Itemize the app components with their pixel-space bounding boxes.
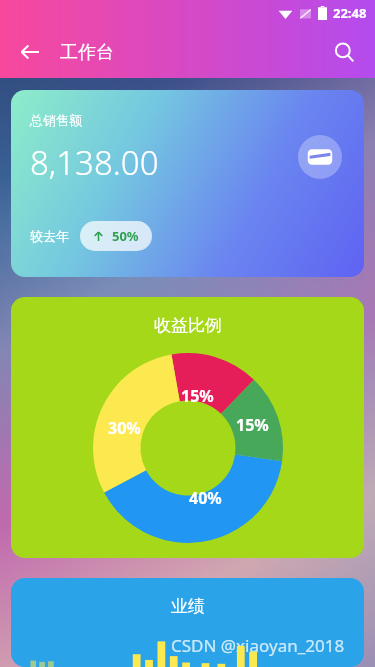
staticText: 业绩 — [171, 596, 205, 617]
button[interactable]: 业绩 — [11, 578, 364, 667]
staticText: 较去年 — [30, 228, 69, 244]
staticText: 22:48 — [333, 4, 367, 22]
button[interactable]: 收益比例 — [11, 297, 364, 558]
button[interactable]: Wallet — [298, 135, 342, 179]
staticText: 8,138.00 — [30, 140, 159, 185]
button[interactable]: 50% — [80, 221, 152, 251]
staticText: 总销售额 — [30, 112, 82, 128]
button[interactable]: 总销售额 — [11, 90, 364, 277]
staticText: 收益比例 — [154, 315, 222, 336]
staticText: 15% — [236, 414, 269, 436]
staticText: 工作台 — [60, 41, 114, 64]
staticText: CSDN @xiaoyan_2018 — [171, 634, 345, 657]
staticText: 50% — [112, 227, 139, 245]
staticText: 15% — [181, 385, 214, 407]
button[interactable]: Search — [325, 33, 363, 71]
staticText: 40% — [189, 487, 222, 509]
staticText: 30% — [108, 417, 141, 439]
button[interactable]: Back — [12, 34, 48, 70]
